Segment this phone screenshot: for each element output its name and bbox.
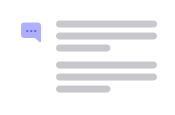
button[interactable]: Messages: [0, 0, 175, 115]
